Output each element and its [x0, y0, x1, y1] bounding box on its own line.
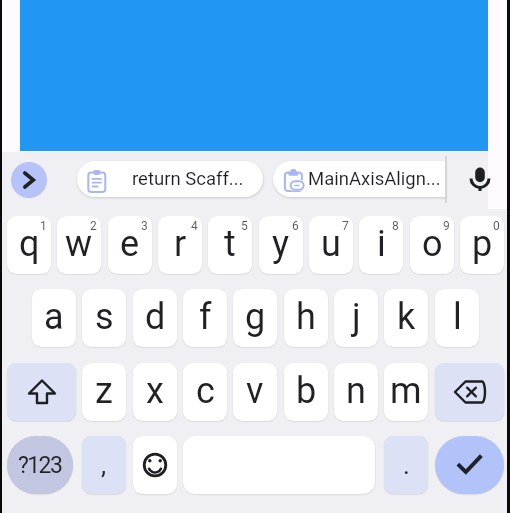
button[interactable]: w — [57, 216, 101, 274]
staticText: t — [224, 223, 236, 265]
button[interactable]: u — [309, 216, 353, 274]
staticText: ?123 — [18, 452, 62, 479]
button[interactable]: r — [158, 216, 202, 274]
button[interactable]: t — [208, 216, 252, 274]
button[interactable] — [435, 436, 504, 494]
staticText: 3 — [141, 219, 148, 233]
staticText: e — [120, 223, 140, 265]
staticText: 1 — [40, 219, 47, 233]
button[interactable] — [11, 162, 47, 198]
button[interactable]: MainAxisAlign... — [273, 161, 445, 197]
button[interactable]: o — [410, 216, 454, 274]
staticText: k — [397, 296, 416, 338]
staticText: 9 — [443, 219, 450, 233]
button[interactable]: ?123 — [7, 436, 73, 494]
button[interactable]: z — [82, 363, 126, 421]
button[interactable]: f — [183, 289, 227, 347]
staticText: q — [19, 223, 40, 265]
staticText: g — [245, 296, 266, 338]
button[interactable]: n — [334, 363, 378, 421]
button[interactable]: x — [133, 363, 177, 421]
staticText: a — [44, 296, 64, 338]
staticText: j — [352, 296, 361, 338]
staticText: o — [422, 223, 443, 265]
button[interactable] — [133, 436, 177, 494]
staticText: r — [174, 223, 187, 265]
staticText: i — [377, 223, 386, 265]
staticText: c — [196, 370, 215, 412]
staticText: 0 — [493, 219, 500, 233]
staticText: m — [390, 370, 422, 412]
staticText: MainAxisAlign... — [308, 168, 441, 190]
button[interactable]: s — [82, 289, 126, 347]
staticText: d — [145, 296, 166, 338]
button[interactable]: g — [233, 289, 277, 347]
staticText: , — [101, 450, 107, 480]
button[interactable]: v — [233, 363, 277, 421]
button[interactable]: k — [384, 289, 428, 347]
button[interactable]: m — [384, 363, 428, 421]
button[interactable]: b — [284, 363, 328, 421]
staticText: 2 — [90, 219, 97, 233]
staticText: 6 — [292, 219, 299, 233]
button[interactable]: p — [460, 216, 504, 274]
staticText: f — [199, 296, 212, 338]
button[interactable]: a — [32, 289, 76, 347]
staticText: 8 — [392, 219, 399, 233]
button[interactable] — [435, 363, 504, 421]
staticText: x — [146, 370, 164, 412]
button[interactable] — [462, 161, 498, 199]
button[interactable]: , — [82, 436, 126, 494]
staticText: w — [65, 223, 93, 265]
staticText: h — [296, 296, 316, 338]
staticText: . — [403, 450, 410, 480]
staticText: n — [346, 370, 366, 412]
button[interactable]: q — [7, 216, 51, 274]
button[interactable]: . — [384, 436, 428, 494]
staticText: y — [272, 223, 290, 265]
button[interactable]: d — [133, 289, 177, 347]
button[interactable]: j — [334, 289, 378, 347]
staticText: v — [246, 370, 264, 412]
staticText: 4 — [191, 219, 198, 233]
staticText: s — [95, 296, 114, 338]
staticText: 5 — [241, 219, 248, 233]
button[interactable]: return Scaff... — [77, 161, 263, 197]
button[interactable]: e — [108, 216, 152, 274]
staticText: u — [321, 223, 341, 265]
button[interactable]: c — [183, 363, 227, 421]
button[interactable]: y — [259, 216, 303, 274]
button[interactable]: h — [284, 289, 328, 347]
staticText: b — [296, 370, 317, 412]
button[interactable]: l — [435, 289, 479, 347]
button[interactable]: i — [359, 216, 403, 274]
staticText: p — [472, 223, 493, 265]
staticText: return Scaff... — [132, 168, 244, 190]
button[interactable] — [7, 363, 76, 421]
staticText: z — [95, 370, 113, 412]
staticText: 7 — [342, 219, 349, 233]
staticText: l — [453, 296, 462, 338]
